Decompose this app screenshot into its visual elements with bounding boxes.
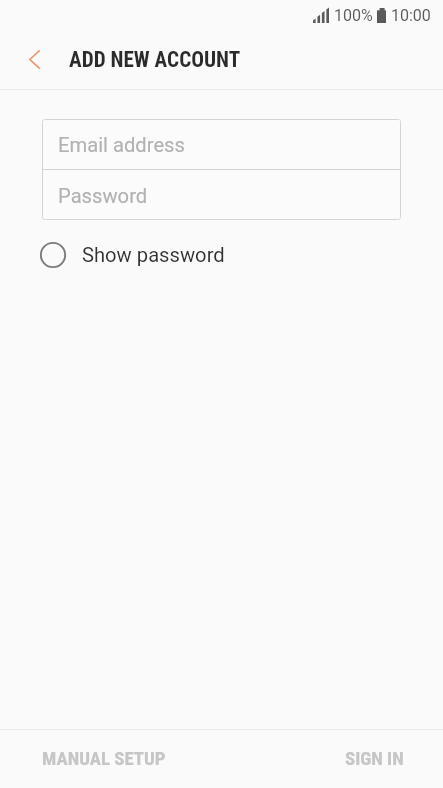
staticText: Password — [58, 184, 148, 208]
staticText: 100% — [334, 6, 373, 25]
button[interactable]: Email address — [42, 119, 401, 169]
staticText: ADD NEW ACCOUNT — [69, 47, 241, 72]
staticText: SIGN IN — [345, 748, 404, 770]
staticText: MANUAL SETUP — [42, 748, 166, 770]
button[interactable]: Back — [0, 30, 69, 89]
button[interactable]: MANUAL SETUP — [0, 738, 180, 780]
staticText: Email address — [58, 133, 185, 157]
button[interactable]: Show password — [40, 242, 225, 268]
staticText: 10:00 — [391, 6, 431, 25]
staticText: Show password — [82, 243, 225, 267]
button[interactable]: SIGN IN — [331, 738, 443, 780]
button[interactable]: Password — [42, 170, 401, 220]
